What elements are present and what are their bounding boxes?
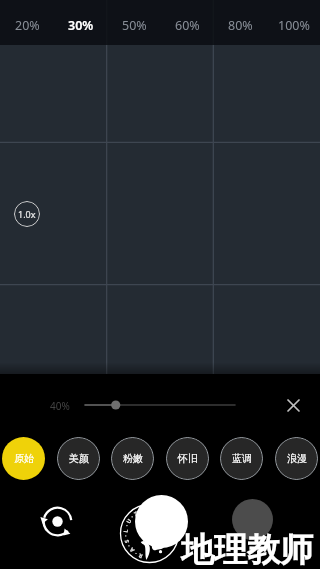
staticText: 美颜 [69,452,89,465]
button[interactable]: 80% [214,0,267,45]
staticText: 粉嫩 [123,452,143,465]
button[interactable]: 60% [161,0,214,45]
staticText: 20% [15,17,40,34]
button[interactable]: Switch camera [40,504,75,539]
staticText: 50% [122,17,147,34]
staticText: 30% [68,17,94,34]
staticText: 80% [228,17,253,34]
button[interactable]: Take photo [135,495,188,548]
button[interactable]: 20% [0,0,54,45]
staticText: 40% [50,399,70,413]
staticText: 蓝调 [232,452,252,465]
button[interactable]: 原始 [2,437,45,480]
button[interactable]: Close [278,390,308,420]
staticText: 原始 [14,452,34,465]
button[interactable]: 30% [54,0,108,45]
button[interactable]: 粉嫩 [111,437,154,480]
staticText: 浪漫 [287,452,307,465]
button[interactable]: 100% [267,0,320,45]
staticText: 100% [278,17,310,34]
staticText: 1.0x [18,208,36,220]
button[interactable]: 50% [108,0,161,45]
button[interactable]: 怀旧 [166,437,209,480]
button[interactable]: 浪漫 [275,437,318,480]
button[interactable]: 美颜 [57,437,100,480]
staticText: 60% [175,17,200,34]
staticText: 怀旧 [178,452,198,465]
button[interactable]: 1.0x [14,201,40,227]
staticText: 地理教师 [181,529,313,569]
button[interactable]: Gallery [232,499,273,540]
button[interactable]: 蓝调 [220,437,263,480]
